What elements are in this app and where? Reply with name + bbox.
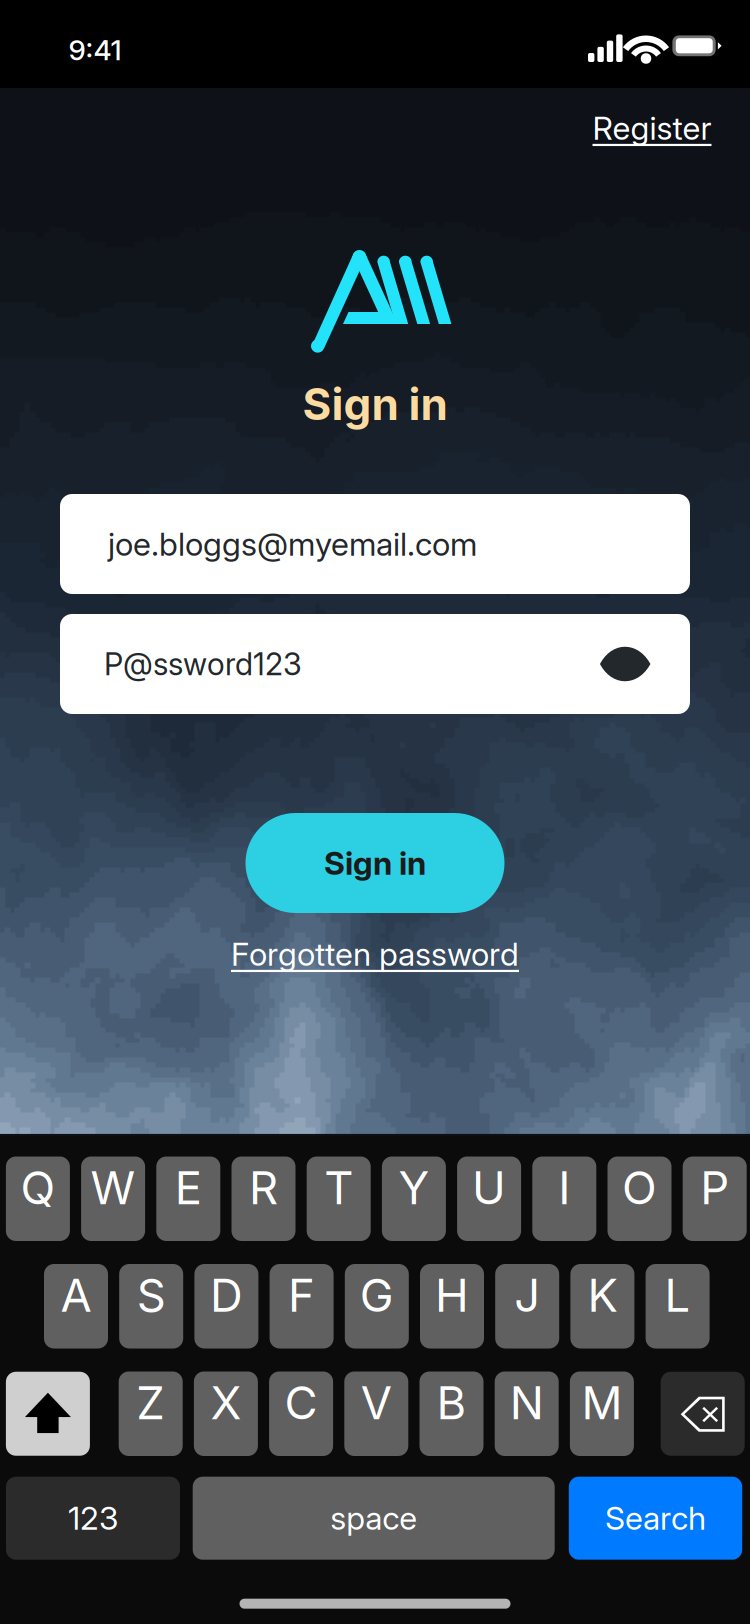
staticText: Q	[20, 1160, 55, 1215]
button[interactable]: B	[419, 1371, 483, 1456]
staticText: M	[581, 1375, 622, 1430]
button[interactable]: 123	[6, 1477, 180, 1560]
button[interactable]: A	[44, 1264, 108, 1348]
staticText: Search	[605, 1499, 706, 1537]
staticText: J	[514, 1268, 540, 1323]
button[interactable]: V	[344, 1371, 408, 1456]
button[interactable]: C	[269, 1371, 333, 1456]
button[interactable]: P	[683, 1156, 747, 1241]
button[interactable]: Forgotten password	[225, 935, 525, 973]
staticText: B	[436, 1375, 466, 1430]
staticText: H	[435, 1268, 469, 1323]
button[interactable]: Delete	[661, 1372, 745, 1456]
staticText: V	[361, 1375, 392, 1430]
staticText: C	[285, 1375, 318, 1430]
button[interactable]: H	[420, 1264, 484, 1348]
button[interactable]: R	[231, 1156, 295, 1241]
staticText: Z	[136, 1375, 165, 1430]
button[interactable]: J	[495, 1264, 559, 1348]
staticText: P@ssword123	[104, 645, 302, 682]
staticText: joe.bloggs@myemail.com	[108, 525, 477, 563]
staticText: P	[700, 1160, 729, 1215]
staticText: I	[558, 1160, 570, 1215]
button[interactable]: L	[646, 1264, 710, 1348]
button[interactable]: Register	[586, 109, 717, 147]
staticText: N	[510, 1375, 544, 1430]
button[interactable]: N	[495, 1371, 559, 1456]
staticText: K	[587, 1268, 617, 1323]
button[interactable]: Sign in	[245, 813, 504, 913]
staticText: Y	[398, 1160, 429, 1215]
staticText: U	[472, 1160, 506, 1215]
staticText: G	[360, 1268, 394, 1323]
button[interactable]: O	[607, 1156, 671, 1241]
button[interactable]: S	[119, 1264, 183, 1348]
staticText: R	[249, 1160, 278, 1215]
button[interactable]: D	[194, 1264, 258, 1348]
staticText: Forgotten password	[231, 935, 519, 973]
staticText: D	[210, 1268, 243, 1323]
button[interactable]: Y	[382, 1156, 446, 1241]
button[interactable]: E	[156, 1156, 220, 1241]
staticText: O	[622, 1160, 657, 1215]
button[interactable]: Q	[6, 1156, 70, 1241]
button[interactable]: T	[307, 1156, 371, 1241]
staticText: space	[330, 1499, 417, 1537]
button[interactable]: Z	[119, 1371, 183, 1456]
staticText: A	[60, 1268, 91, 1323]
button[interactable]: space	[193, 1477, 555, 1560]
staticText: F	[288, 1268, 315, 1323]
button[interactable]: M	[570, 1371, 634, 1456]
staticText: 9:41	[68, 33, 121, 67]
button[interactable]: Shift	[6, 1372, 90, 1456]
button[interactable]: F	[270, 1264, 334, 1348]
button[interactable]: X	[194, 1371, 258, 1456]
button[interactable]: Search	[569, 1477, 742, 1560]
button[interactable]: W	[81, 1156, 145, 1241]
staticText: S	[137, 1268, 166, 1323]
staticText: 123	[68, 1499, 118, 1537]
button[interactable]: I	[532, 1156, 596, 1241]
staticText: Register	[592, 109, 711, 147]
staticText: T	[324, 1160, 353, 1215]
staticText: Sign in	[324, 844, 426, 882]
staticText: W	[91, 1160, 136, 1215]
staticText: L	[665, 1268, 691, 1323]
staticText: Sign in	[302, 377, 447, 431]
button[interactable]: G	[345, 1264, 409, 1348]
staticText: X	[210, 1375, 241, 1430]
button[interactable]: Show password	[586, 634, 664, 694]
button[interactable]: K	[570, 1264, 634, 1348]
button[interactable]: U	[457, 1156, 521, 1241]
staticText: E	[175, 1160, 202, 1215]
